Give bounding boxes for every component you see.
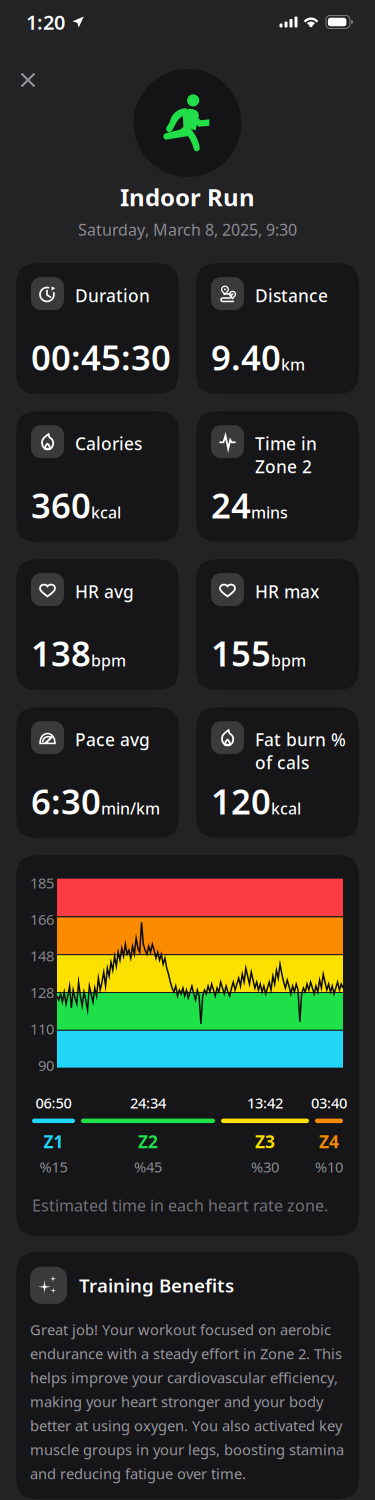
staticText: Z2: [138, 1130, 158, 1153]
staticText: Saturday, March 8, 2025, 9:30: [78, 219, 297, 240]
staticText: Fat burn % of cals: [255, 728, 346, 774]
staticText: 1:20: [26, 9, 65, 35]
button[interactable]: Distance: [196, 263, 359, 394]
staticText: km: [281, 354, 305, 375]
staticText: Z4: [319, 1130, 339, 1153]
button[interactable]: Calories: [16, 411, 179, 542]
staticText: 90: [38, 1056, 54, 1075]
staticText: 24:34: [130, 1093, 166, 1113]
staticText: Estimated time in each heart rate zone.: [32, 1195, 328, 1216]
staticText: 13:42: [247, 1093, 283, 1113]
staticText: 128: [30, 983, 54, 1002]
staticText: mins: [251, 502, 288, 523]
staticText: Calories: [75, 432, 142, 455]
staticText: 6:30: [31, 778, 101, 824]
staticText: %15: [39, 1157, 67, 1177]
staticText: 06:50: [35, 1093, 71, 1113]
button[interactable]: HR avg: [16, 559, 179, 690]
staticText: Time in Zone 2: [255, 432, 317, 478]
staticText: Great job! Your workout focused on aerob…: [30, 1320, 344, 1483]
staticText: 166: [30, 910, 54, 929]
staticText: min/km: [101, 798, 160, 819]
staticText: Z3: [255, 1130, 275, 1153]
button[interactable]: Fat burn % of cals: [196, 707, 359, 838]
staticText: Indoor Run: [120, 181, 255, 213]
staticText: Duration: [75, 284, 150, 307]
button[interactable]: HR max: [196, 559, 359, 690]
staticText: Z1: [43, 1130, 63, 1153]
button[interactable]: Pace avg: [16, 707, 179, 838]
staticText: HR max: [255, 580, 319, 603]
staticText: Pace avg: [75, 728, 150, 751]
staticText: HR avg: [75, 580, 134, 603]
staticText: %45: [134, 1157, 162, 1177]
staticText: 03:40: [311, 1093, 347, 1113]
staticText: 00:45:30: [31, 334, 171, 380]
staticText: kcal: [271, 798, 301, 819]
staticText: 24: [211, 482, 251, 528]
staticText: %30: [251, 1157, 279, 1177]
staticText: bpm: [271, 650, 306, 671]
staticText: 138: [31, 630, 91, 676]
staticText: 9.40: [211, 334, 281, 380]
staticText: 148: [30, 946, 54, 966]
staticText: bpm: [91, 650, 126, 671]
staticText: 120: [211, 778, 271, 824]
staticText: 110: [30, 1019, 54, 1039]
staticText: Training Benefits: [79, 1273, 234, 1298]
staticText: 155: [211, 630, 271, 676]
staticText: 185: [30, 873, 54, 893]
staticText: %10: [315, 1157, 343, 1177]
button[interactable]: Duration: [16, 263, 179, 394]
button[interactable]: Close: [13, 65, 43, 95]
staticText: 360: [31, 482, 91, 528]
button[interactable]: Time in Zone 2: [196, 411, 359, 542]
staticText: kcal: [91, 502, 121, 523]
staticText: Distance: [255, 284, 328, 307]
